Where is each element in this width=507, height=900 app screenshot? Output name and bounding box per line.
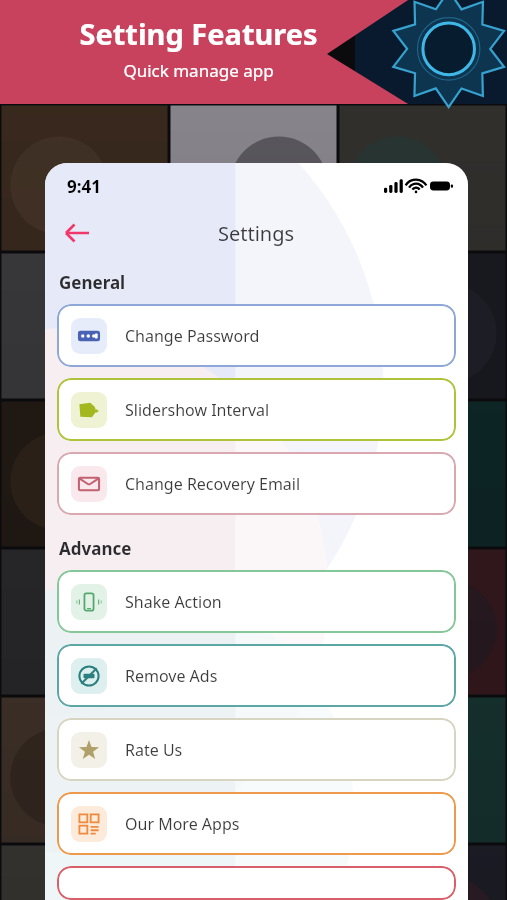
staticText: Our More Apps — [125, 813, 240, 835]
button[interactable]: Change Password — [57, 304, 456, 367]
staticText: Remove Ads — [125, 665, 218, 687]
staticText: Change Recovery Email — [125, 473, 301, 495]
staticText: Quick manage app — [123, 59, 274, 82]
staticText: 9:41 — [67, 175, 101, 198]
button[interactable]: Shake Action — [57, 570, 456, 633]
staticText: Change Password — [125, 325, 260, 347]
button[interactable]: Our More Apps — [57, 792, 456, 855]
button[interactable] — [57, 866, 456, 900]
staticText: Setting Features — [79, 14, 318, 53]
staticText: Advance — [59, 537, 132, 560]
button[interactable]: Change Recovery Email — [57, 452, 456, 515]
button[interactable]: Rate Us — [57, 718, 456, 781]
staticText: Settings — [218, 220, 295, 247]
button[interactable]: Slidershow Interval — [57, 378, 456, 441]
staticText: Slidershow Interval — [125, 399, 270, 421]
button[interactable]: Back — [55, 211, 99, 255]
staticText: General — [59, 271, 126, 294]
button[interactable]: Remove Ads — [57, 644, 456, 707]
staticText: Shake Action — [125, 591, 222, 613]
staticText: Rate Us — [125, 739, 183, 761]
